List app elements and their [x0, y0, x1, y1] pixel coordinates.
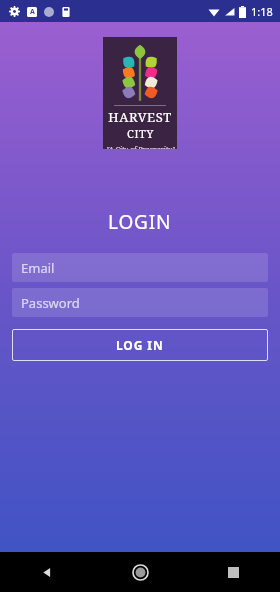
button[interactable]: Email	[12, 253, 268, 282]
staticText: 1:18	[251, 4, 273, 19]
staticText: LOGIN	[108, 209, 172, 235]
button[interactable]: Home	[94, 552, 187, 592]
button[interactable]: Back	[0, 552, 94, 592]
staticText: LOG IN	[116, 337, 164, 353]
staticText: HARVEST	[108, 108, 172, 126]
staticText: Password	[21, 294, 80, 312]
staticText: CITY	[127, 126, 154, 141]
staticText: "A City of Prosperity"	[106, 145, 175, 149]
staticText: Email	[21, 259, 55, 277]
button[interactable]: Password	[12, 288, 268, 317]
button[interactable]: Recent apps	[187, 552, 280, 592]
staticText: A	[30, 7, 35, 17]
button[interactable]: LOG IN	[12, 329, 268, 361]
